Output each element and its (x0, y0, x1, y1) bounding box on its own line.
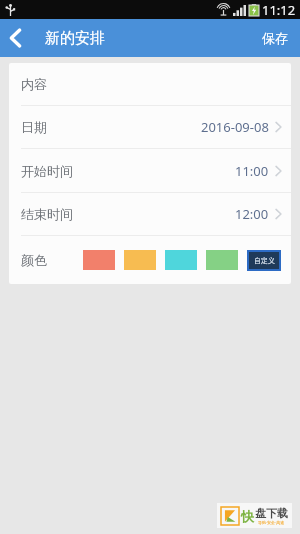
staticText: 盘下载 (255, 506, 288, 520)
staticText: 颜色 (21, 252, 47, 268)
button[interactable]: 保存 (250, 22, 300, 54)
staticText: 11:00 (235, 162, 269, 180)
button[interactable]: 日期 (9, 106, 291, 148)
staticText: 12:00 (235, 205, 269, 223)
staticText: 导航·安全·高速 (258, 520, 285, 525)
staticText: 保存 (262, 30, 288, 46)
button[interactable]: 内容 (9, 63, 291, 105)
staticText: 日期 (21, 119, 47, 135)
staticText: 内容 (21, 76, 47, 92)
staticText: 开始时间 (21, 163, 73, 179)
staticText: 2016-09-08 (201, 118, 269, 136)
staticText: 结束时间 (21, 206, 73, 222)
button[interactable]: 结束时间 (9, 193, 291, 235)
button[interactable]: Back (0, 23, 29, 53)
button[interactable]: 开始时间 (9, 149, 291, 192)
staticText: 快 (241, 508, 254, 524)
staticText: 自定义 (254, 256, 275, 265)
staticText: 新的安排 (45, 29, 105, 48)
button[interactable]: 自定义 (247, 250, 281, 271)
staticText: 11:12 (262, 1, 296, 19)
